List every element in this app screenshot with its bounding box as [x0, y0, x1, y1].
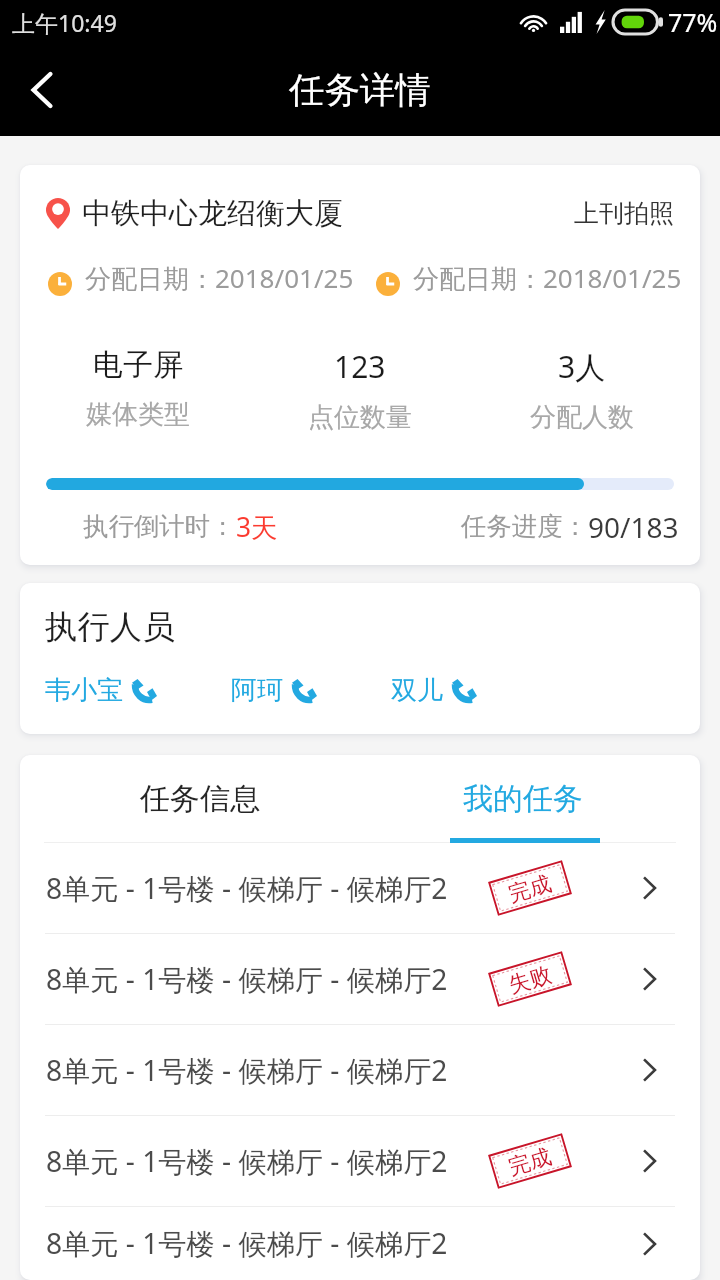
staticText: 分配人数: [530, 401, 634, 434]
staticText: 执行倒计时：: [83, 511, 236, 543]
staticText: 失败: [505, 960, 555, 999]
button[interactable]: 上刊拍照: [574, 198, 674, 229]
staticText: 77%: [668, 5, 718, 39]
staticText: 8单元 - 1号楼 - 候梯厅 - 候梯厅2: [46, 1051, 448, 1090]
staticText: 韦小宝: [45, 674, 123, 707]
button[interactable]: 双儿: [391, 674, 477, 707]
staticText: 8单元 - 1号楼 - 候梯厅 - 候梯厅2: [46, 960, 448, 999]
staticText: 中铁中心龙绍衡大厦: [82, 195, 343, 232]
staticText: 点位数量: [308, 401, 412, 434]
button[interactable]: 8单元 - 1号楼 - 候梯厅 - 候梯厅2: [20, 1207, 700, 1280]
button[interactable]: 韦小宝: [45, 674, 157, 707]
button[interactable]: 任务信息: [38, 755, 361, 843]
button[interactable]: 8单元 - 1号楼 - 候梯厅 - 候梯厅2: [20, 843, 700, 933]
staticText: 任务详情: [289, 68, 431, 113]
button[interactable]: 8单元 - 1号楼 - 候梯厅 - 候梯厅2: [20, 1116, 700, 1206]
staticText: 90/183: [588, 508, 679, 546]
button[interactable]: 阿珂: [231, 674, 317, 707]
staticText: 我的任务: [463, 780, 583, 818]
staticText: 媒体类型: [86, 398, 190, 431]
button[interactable]: 8单元 - 1号楼 - 候梯厅 - 候梯厅2: [20, 1025, 700, 1115]
staticText: 完成: [505, 869, 555, 908]
staticText: 3人: [558, 346, 606, 387]
staticText: 上午10:49: [12, 7, 117, 38]
staticText: 阿珂: [231, 674, 283, 707]
staticText: 3天: [236, 509, 278, 545]
staticText: 8单元 - 1号楼 - 候梯厅 - 候梯厅2: [46, 869, 448, 908]
staticText: 8单元 - 1号楼 - 候梯厅 - 候梯厅2: [46, 1224, 448, 1263]
staticText: 分配日期：2018/01/25: [413, 260, 682, 296]
staticText: 任务进度：: [461, 511, 588, 543]
staticText: 8单元 - 1号楼 - 候梯厅 - 候梯厅2: [46, 1142, 448, 1181]
button[interactable]: 我的任务: [361, 755, 684, 843]
staticText: 分配日期：2018/01/25: [85, 260, 354, 296]
staticText: 执行人员: [45, 607, 175, 648]
staticText: 任务信息: [140, 780, 260, 818]
staticText: 123: [334, 346, 386, 387]
button[interactable]: Back: [0, 48, 84, 132]
staticText: 完成: [505, 1142, 555, 1181]
button[interactable]: 8单元 - 1号楼 - 候梯厅 - 候梯厅2: [20, 934, 700, 1024]
staticText: 电子屏: [93, 346, 183, 384]
staticText: 双儿: [391, 674, 443, 707]
